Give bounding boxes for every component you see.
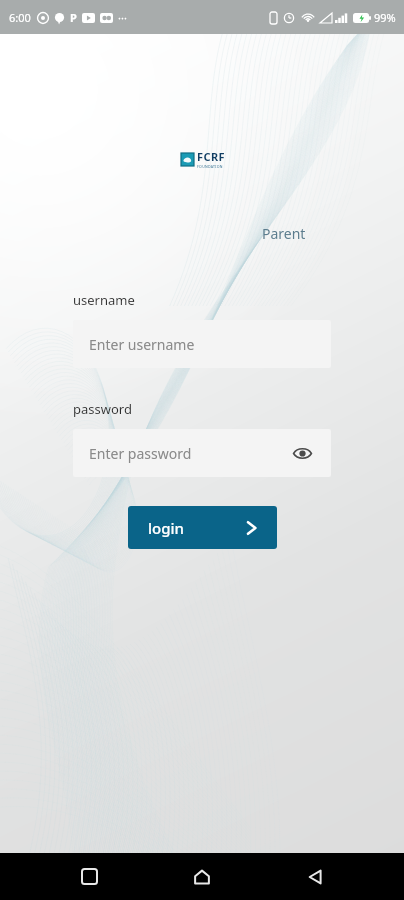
staticText: username bbox=[73, 291, 135, 309]
staticText: Parent bbox=[262, 224, 306, 243]
staticText: Enter password bbox=[89, 444, 192, 463]
staticText: 99% bbox=[374, 10, 396, 25]
staticText: Enter username bbox=[89, 335, 195, 354]
staticText: P bbox=[70, 10, 77, 25]
staticText: 6:00 bbox=[9, 10, 31, 25]
staticText: FCRF bbox=[197, 149, 225, 164]
staticText: ··· bbox=[118, 10, 127, 25]
button[interactable]: login bbox=[128, 506, 277, 549]
button[interactable]: Show password bbox=[289, 440, 315, 466]
button[interactable]: Enter password bbox=[73, 429, 331, 477]
button[interactable]: Home bbox=[178, 853, 226, 900]
button[interactable]: Recent apps bbox=[65, 853, 113, 900]
staticText: FOUNDATION bbox=[197, 164, 223, 169]
button[interactable]: Back bbox=[291, 853, 339, 900]
staticText: login bbox=[148, 518, 184, 538]
button[interactable]: Enter username bbox=[73, 320, 331, 368]
staticText: password bbox=[73, 400, 132, 418]
